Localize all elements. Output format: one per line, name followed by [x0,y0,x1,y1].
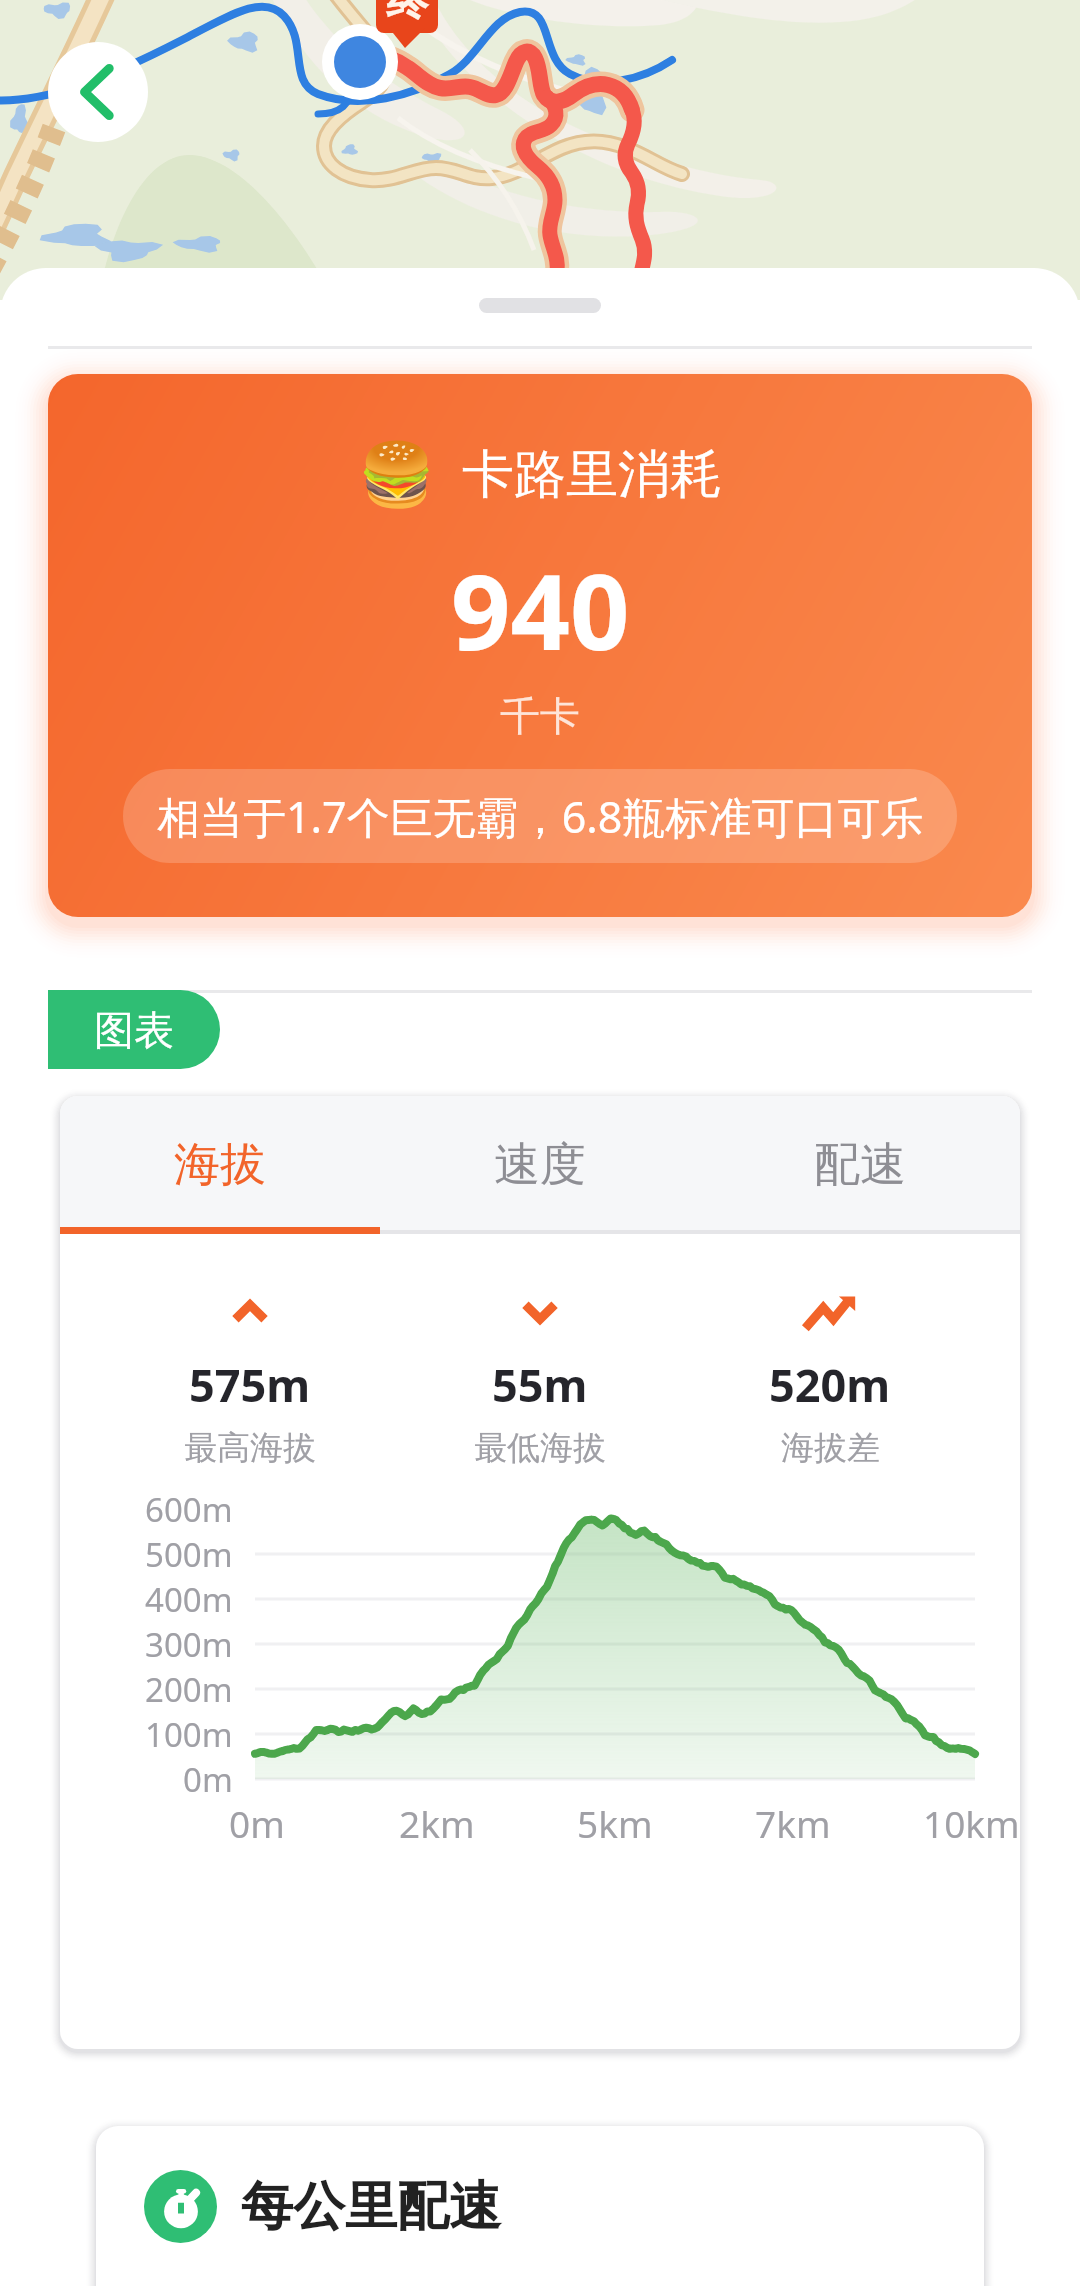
staticText: 速度 [494,1136,586,1194]
staticText: 940 [451,539,630,681]
staticText: 55m [492,1354,588,1415]
button[interactable]: 🍔 [48,374,1032,917]
staticText: 图表 [94,1005,174,1055]
staticText: 600m [145,1487,233,1532]
staticText: 300m [145,1622,233,1667]
button[interactable]: 每公里配速 [96,2126,984,2286]
staticText: 配速 [814,1136,906,1194]
button[interactable]: 配速 [700,1096,1020,1234]
staticText: 500m [145,1532,233,1577]
staticText: 200m [145,1667,233,1712]
button[interactable]: 海拔 [60,1096,380,1234]
staticText: 相当于1.7个巨无霸，6.8瓶标准可口可乐 [157,787,924,846]
staticText: 2km [399,1798,475,1848]
staticText: 每公里配速 [241,2174,501,2240]
button[interactable]: Back [48,42,148,142]
staticText: 终 [386,0,428,28]
staticText: 575m [189,1354,311,1415]
staticText: 5km [577,1798,653,1848]
staticText: 卡路里消耗 [462,442,722,508]
staticText: 400m [145,1577,233,1622]
staticText: 海拔 [174,1136,266,1194]
button[interactable]: 图表 [48,990,220,1069]
staticText: 0m [229,1798,285,1848]
staticText: 最低海拔 [474,1427,606,1469]
staticText: 0m [183,1757,233,1802]
staticText: 🍔 [358,438,436,511]
staticText: 千卡 [500,691,580,741]
staticText: 520m [769,1354,891,1415]
staticText: 100m [145,1712,233,1757]
staticText: 10km [923,1798,1020,1848]
button[interactable]: 速度 [380,1096,700,1234]
staticText: 海拔差 [781,1427,880,1469]
staticText: 最高海拔 [184,1427,316,1469]
staticText: 7km [755,1798,831,1848]
